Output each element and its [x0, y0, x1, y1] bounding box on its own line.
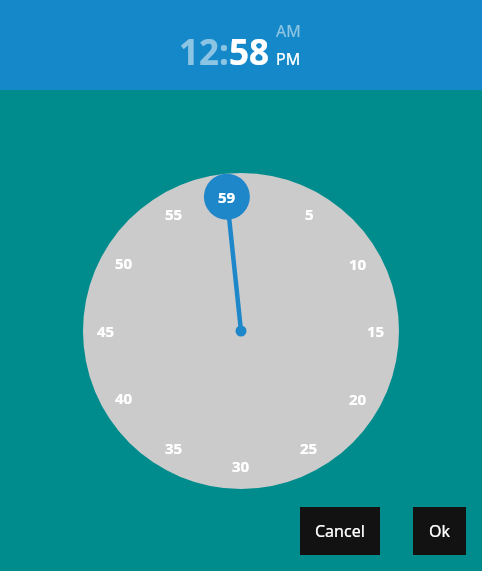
button[interactable]: Cancel [300, 507, 380, 555]
button[interactable]: PM [276, 48, 301, 70]
staticText: 40 [115, 388, 133, 408]
staticText: 10 [349, 254, 367, 274]
staticText: Ok [429, 520, 451, 542]
staticText: 50 [115, 253, 133, 273]
staticText: PM [276, 48, 301, 70]
staticText: AM [276, 20, 301, 42]
staticText: 15 [367, 321, 385, 341]
staticText: 30 [232, 456, 250, 476]
staticText: 25 [300, 438, 318, 458]
button[interactable]: AM [276, 20, 301, 42]
staticText: 45 [97, 321, 115, 341]
button[interactable]: 12:58 [179, 28, 269, 76]
staticText: 5 [305, 204, 314, 224]
staticText: 35 [165, 438, 183, 458]
staticText: Cancel [315, 520, 365, 542]
staticText: 59 [218, 187, 236, 207]
button[interactable]: Minute picker dial [0, 0, 482, 571]
staticText: 20 [349, 389, 367, 409]
button[interactable]: Ok [413, 507, 466, 555]
staticText: 55 [165, 204, 183, 224]
